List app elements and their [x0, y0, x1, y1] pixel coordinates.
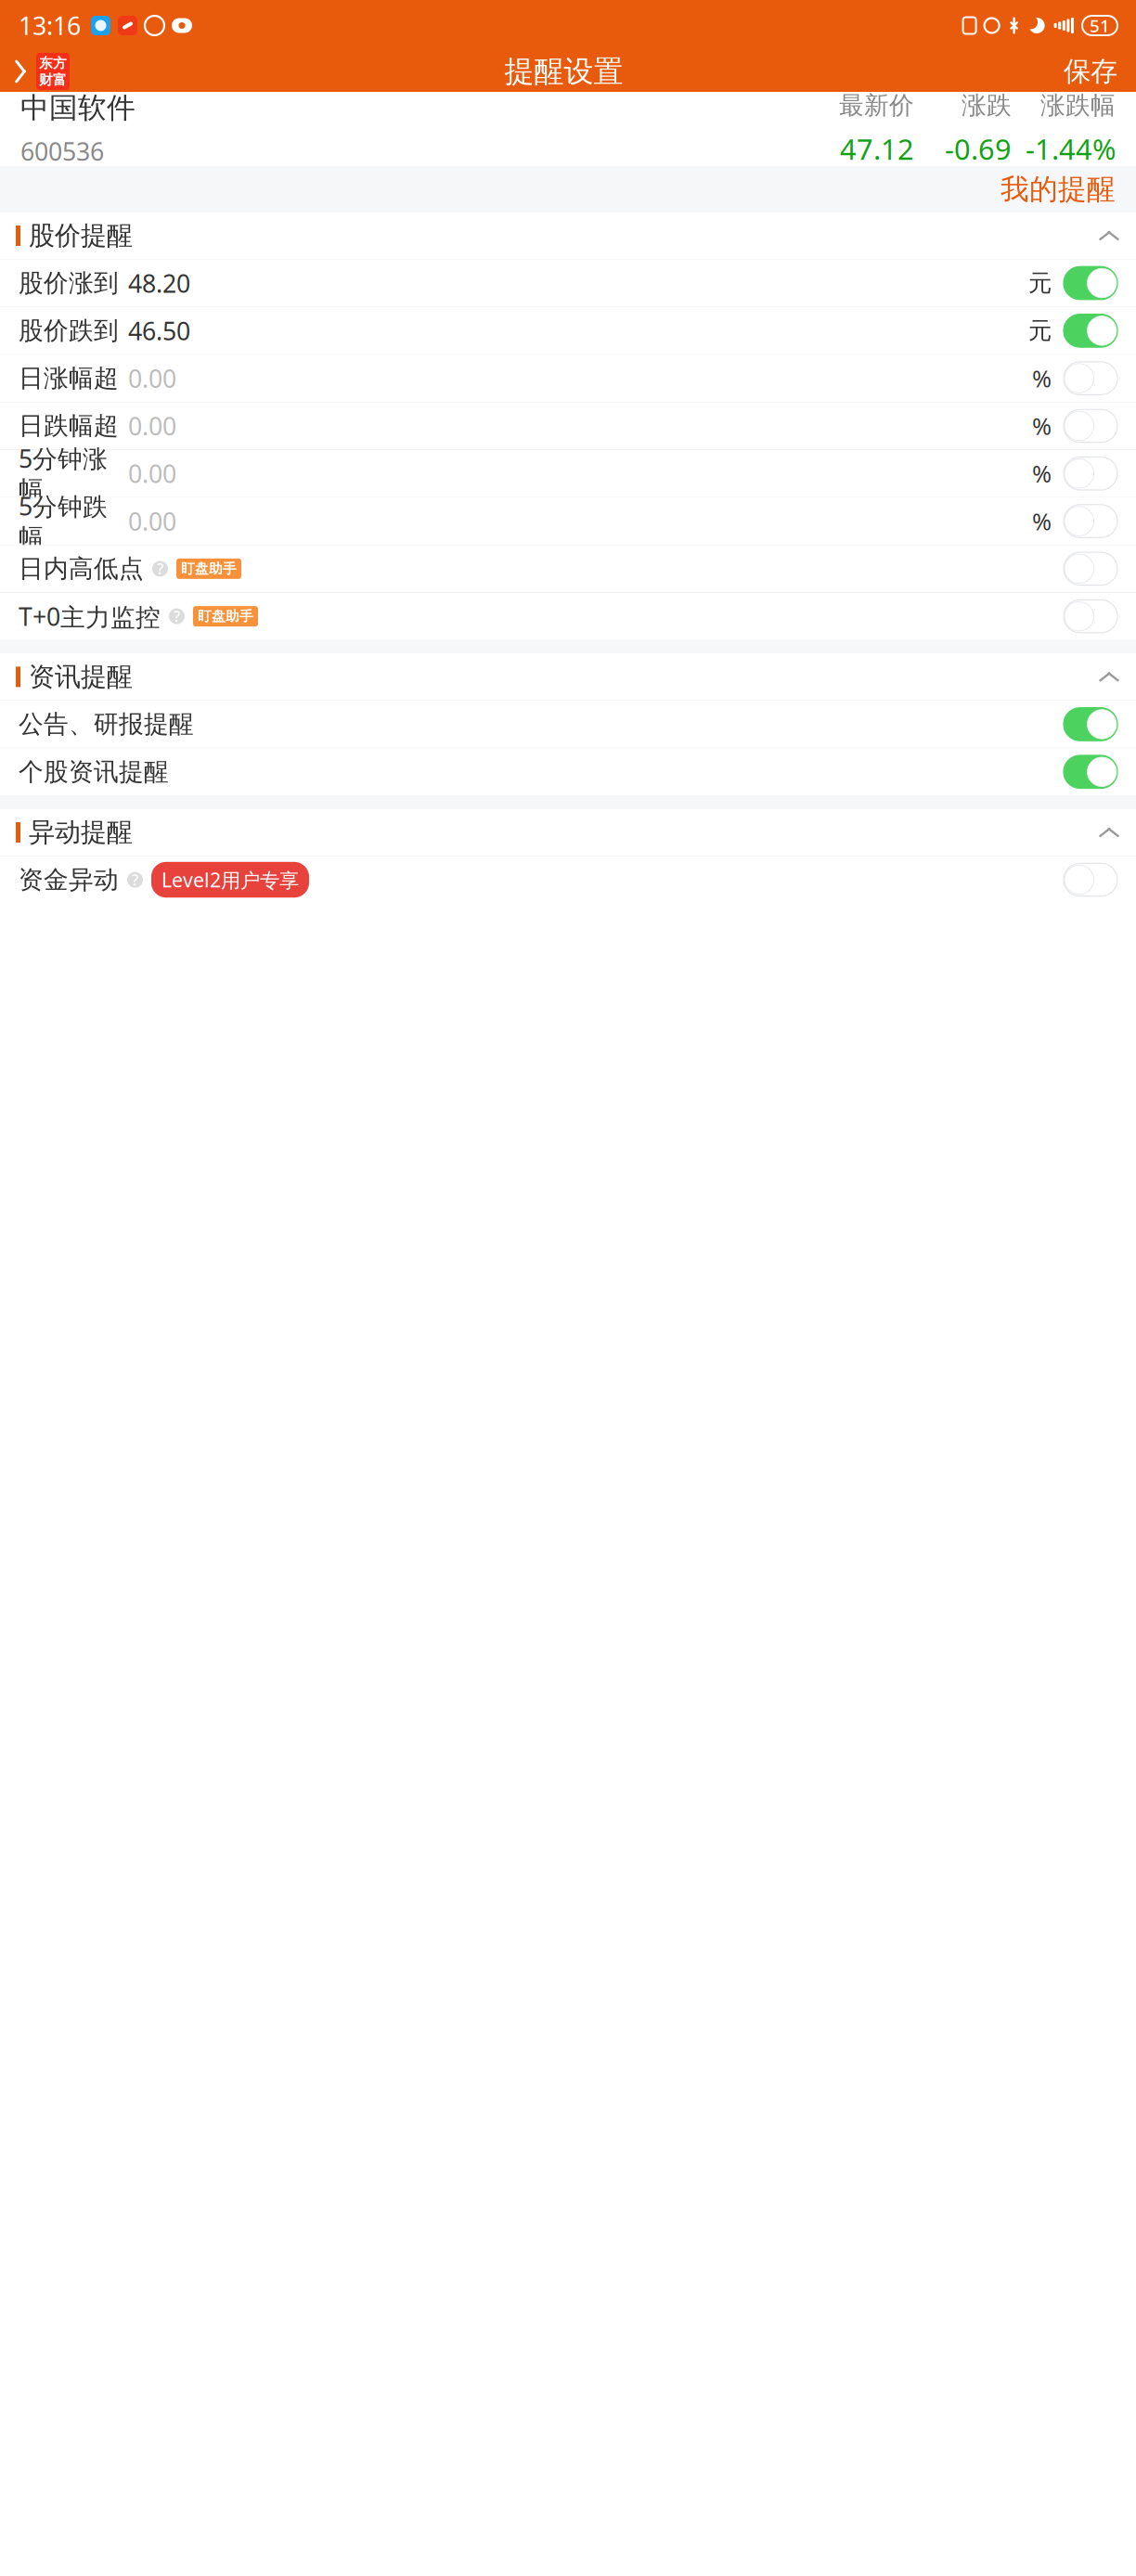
- staticText: %: [1032, 410, 1052, 441]
- button[interactable]: 日跌幅超: [0, 402, 1136, 449]
- button[interactable]: 保存: [1045, 51, 1136, 92]
- staticText: 5分钟跌幅: [19, 489, 108, 553]
- button[interactable]: 异动提醒: [0, 809, 1136, 856]
- staticText: %: [1032, 363, 1052, 394]
- staticText: 13:16: [19, 9, 81, 42]
- staticText: 股价提醒: [29, 220, 133, 252]
- staticText: ?: [157, 559, 163, 578]
- staticText: 盯盘助手: [181, 560, 237, 577]
- staticText: -0.69: [945, 130, 1012, 168]
- button[interactable]: 资金异动: [0, 856, 1136, 903]
- staticText: %: [1032, 505, 1052, 537]
- staticText: 元: [1028, 316, 1052, 345]
- button[interactable]: Back: [0, 51, 83, 92]
- staticText: 异动提醒: [29, 816, 133, 848]
- staticText: 元: [1028, 269, 1052, 298]
- button[interactable]: 5分钟跌幅: [0, 498, 1136, 545]
- staticText: 涨跌幅: [1040, 90, 1116, 121]
- button[interactable]: 股价跌到: [0, 307, 1136, 354]
- staticText: 日内高低点: [19, 554, 144, 584]
- staticText: 资金异动: [19, 865, 119, 895]
- staticText: -1.44%: [1026, 130, 1116, 168]
- staticText: Level2用户专享: [161, 867, 299, 893]
- staticText: 48.20: [128, 267, 190, 299]
- staticText: 我的提醒: [1000, 172, 1116, 207]
- staticText: ?: [132, 870, 138, 890]
- button[interactable]: 公告、研报提醒: [0, 701, 1136, 748]
- staticText: 日跌幅超: [19, 411, 119, 441]
- staticText: 个股资讯提醒: [19, 757, 169, 787]
- staticText: %: [1032, 458, 1052, 489]
- staticText: 0.00: [128, 457, 176, 490]
- staticText: 财富: [39, 71, 67, 88]
- staticText: 盯盘助手: [198, 608, 253, 625]
- staticText: 保存: [1064, 55, 1117, 88]
- button[interactable]: 个股资讯提醒: [0, 748, 1136, 795]
- staticText: 51: [1090, 14, 1110, 37]
- staticText: 股价跌到: [19, 316, 119, 346]
- staticText: 股价涨到: [19, 268, 119, 298]
- staticText: 涨跌: [962, 90, 1012, 121]
- staticText: 0.00: [128, 409, 176, 442]
- button[interactable]: 我的提醒: [980, 166, 1136, 213]
- staticText: 资讯提醒: [29, 661, 133, 693]
- staticText: 47.12: [840, 130, 914, 168]
- button[interactable]: T+0主力监控: [0, 593, 1136, 640]
- staticText: 46.50: [128, 314, 190, 347]
- button[interactable]: 日内高低点: [0, 545, 1136, 592]
- staticText: T+0主力监控: [19, 600, 161, 633]
- staticText: 0.00: [128, 505, 176, 537]
- staticText: 提醒设置: [504, 53, 623, 90]
- staticText: 公告、研报提醒: [19, 709, 194, 739]
- staticText: 中国软件: [20, 90, 136, 125]
- staticText: 600536: [20, 135, 104, 167]
- button[interactable]: 资讯提醒: [0, 654, 1136, 700]
- button[interactable]: 日涨幅超: [0, 355, 1136, 402]
- staticText: 最新价: [839, 90, 914, 121]
- staticText: 东方: [39, 55, 67, 71]
- button[interactable]: 股价提醒: [0, 213, 1136, 259]
- staticText: 0.00: [128, 362, 176, 395]
- staticText: ?: [174, 606, 180, 626]
- staticText: 日涨幅超: [19, 363, 119, 394]
- button[interactable]: 股价涨到: [0, 260, 1136, 307]
- staticText: 5分钟涨幅: [19, 442, 108, 505]
- button[interactable]: 5分钟涨幅: [0, 450, 1136, 497]
